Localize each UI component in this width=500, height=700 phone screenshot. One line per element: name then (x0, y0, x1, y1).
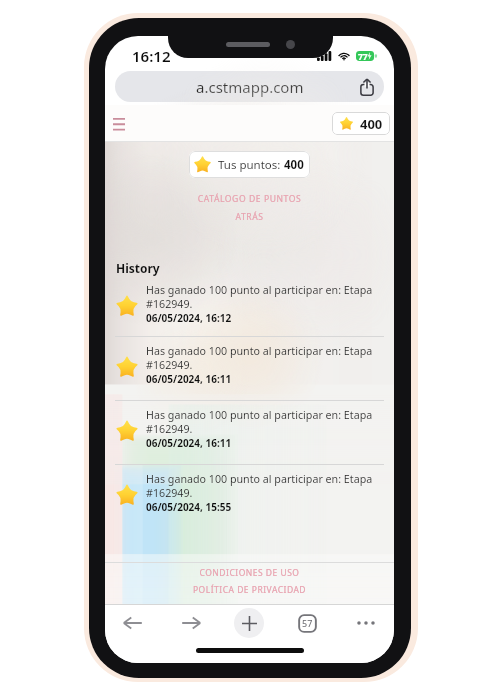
button[interactable]: Has ganado 100 punto al participar en: E… (105, 276, 394, 336)
button[interactable]: 400 (332, 112, 390, 135)
button[interactable]: Has ganado 100 punto al participar en: E… (105, 465, 394, 528)
staticText: History (116, 260, 160, 276)
staticText: Tus puntos: (218, 157, 284, 173)
button[interactable]: CONDICIONES DE USO (105, 567, 394, 579)
button[interactable]: Forward (175, 607, 207, 639)
staticText: 06/05/2024, 15:55 (146, 500, 232, 514)
staticText: 06/05/2024, 16:12 (146, 311, 232, 325)
staticText: 400 (284, 157, 304, 173)
button[interactable]: ATRÁS (105, 211, 394, 223)
staticText: Has ganado 100 punto al participar en: E… (146, 283, 386, 311)
button[interactable]: Back (117, 607, 149, 639)
button[interactable]: Menu (113, 117, 125, 131)
button[interactable]: a.cstmapp.com (115, 71, 384, 102)
staticText: 400 (360, 115, 383, 133)
button[interactable]: POLÍTICA DE PRIVACIDAD (105, 584, 394, 596)
staticText: 06/05/2024, 16:11 (146, 372, 232, 386)
staticText: Has ganado 100 punto al participar en: E… (146, 472, 386, 500)
button[interactable]: New tab (234, 608, 264, 638)
button[interactable]: Tus puntos: (189, 151, 310, 178)
button[interactable]: CATÁLOGO DE PUNTOS (105, 193, 394, 205)
button[interactable]: Has ganado 100 punto al participar en: E… (105, 337, 394, 400)
staticText: Has ganado 100 punto al participar en: E… (146, 408, 386, 436)
staticText: 16:12 (132, 46, 171, 66)
staticText: a.cstmapp.com (196, 77, 304, 97)
button[interactable]: Tabs (291, 607, 323, 639)
button[interactable]: More (350, 607, 382, 639)
button[interactable]: Has ganado 100 punto al participar en: E… (105, 401, 394, 464)
staticText: 06/05/2024, 16:11 (146, 436, 232, 450)
staticText: Has ganado 100 punto al participar en: E… (146, 344, 386, 372)
staticText: 77 (358, 51, 368, 61)
staticText: 57 (302, 617, 313, 629)
button[interactable]: Share (358, 78, 376, 96)
